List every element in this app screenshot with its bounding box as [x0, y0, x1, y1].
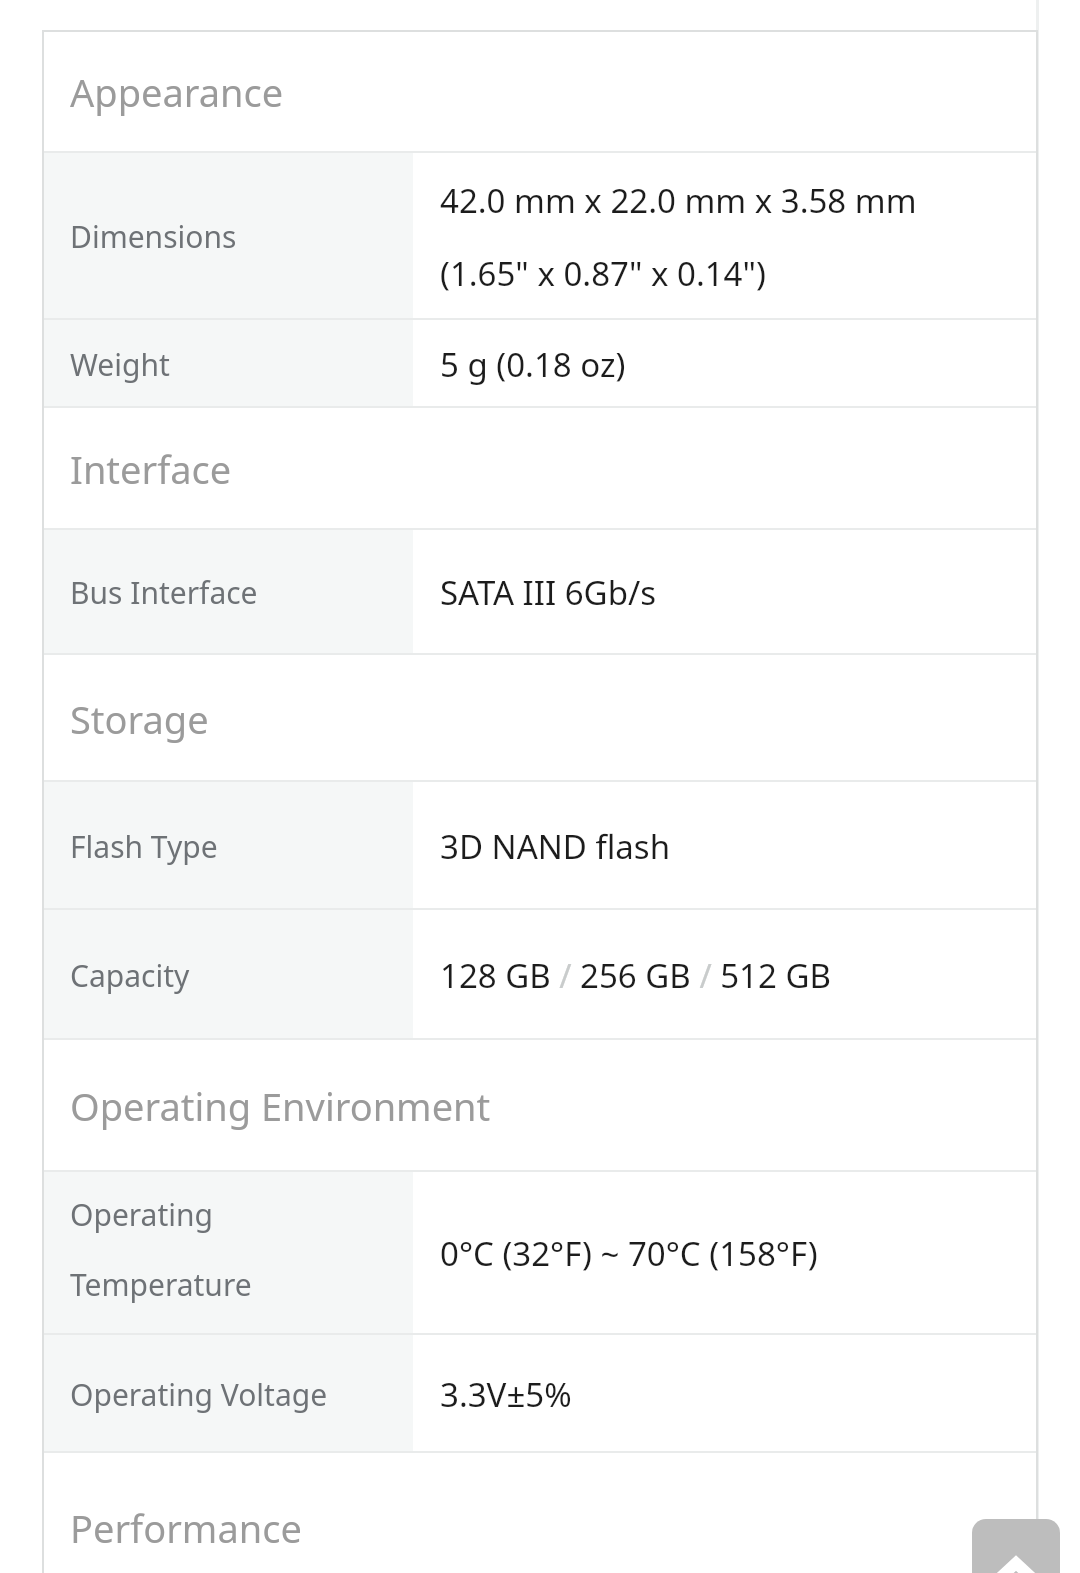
staticText: Interface: [70, 443, 232, 495]
staticText: 3.3V±5%: [440, 1372, 572, 1417]
staticText: Operating Voltage: [70, 1374, 328, 1415]
staticText: Bus Interface: [70, 572, 258, 613]
staticText: Storage: [70, 693, 209, 745]
button[interactable]: Operating Environment: [42, 1040, 1038, 1172]
button[interactable]: Weight: [42, 320, 1038, 408]
staticText: 5 g (0.18 oz): [440, 342, 626, 387]
staticText: 3D NAND flash: [440, 824, 671, 869]
staticText: 0°C (32°F) ~ 70°C (158°F): [440, 1231, 818, 1276]
staticText: Operating Temperature: [70, 1194, 252, 1305]
button[interactable]: Storage: [42, 655, 1038, 782]
button[interactable]: Interface: [42, 408, 1038, 530]
button[interactable]: Bus Interface: [42, 530, 1038, 655]
staticText: Flash Type: [70, 826, 218, 867]
button[interactable]: Scroll to top: [972, 1519, 1060, 1573]
button[interactable]: Capacity: [42, 910, 1038, 1040]
staticText: Weight: [70, 344, 170, 385]
staticText: Appearance: [70, 66, 284, 118]
staticText: 42.0 mm x 22.0 mm x 3.58 mm (1.65" x 0.8…: [440, 178, 917, 295]
button[interactable]: Operating Temperature: [42, 1172, 1038, 1335]
button[interactable]: Operating Voltage: [42, 1335, 1038, 1453]
staticText: Capacity: [70, 955, 190, 996]
button[interactable]: Performance: [42, 1453, 1038, 1573]
staticText: 128 GB / 256 GB / 512 GB: [440, 953, 831, 998]
staticText: Dimensions: [70, 216, 237, 257]
button[interactable]: Dimensions: [42, 153, 1038, 320]
button[interactable]: Flash Type: [42, 782, 1038, 910]
button[interactable]: Appearance: [42, 30, 1038, 153]
staticText: SATA III 6Gb/s: [440, 570, 657, 615]
staticText: Performance: [70, 1502, 302, 1554]
staticText: Operating Environment: [70, 1080, 491, 1132]
